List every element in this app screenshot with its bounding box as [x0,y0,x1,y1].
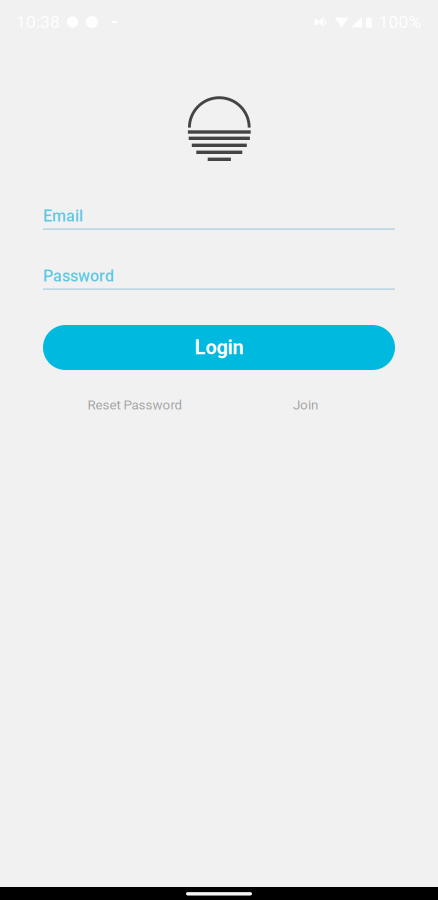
button[interactable]: Join [227,394,384,416]
staticText: Login [194,336,243,359]
staticText: Join [293,397,318,413]
staticText: 100% [378,12,421,32]
button[interactable]: Password [43,268,395,290]
staticText: Email [43,207,83,225]
button[interactable]: Email [43,208,395,230]
staticText: Reset Password [87,397,182,413]
button[interactable]: Login [43,325,395,370]
button[interactable]: Reset Password [43,394,227,416]
staticText: Password [43,267,114,285]
staticText: 10:38 [16,12,60,32]
